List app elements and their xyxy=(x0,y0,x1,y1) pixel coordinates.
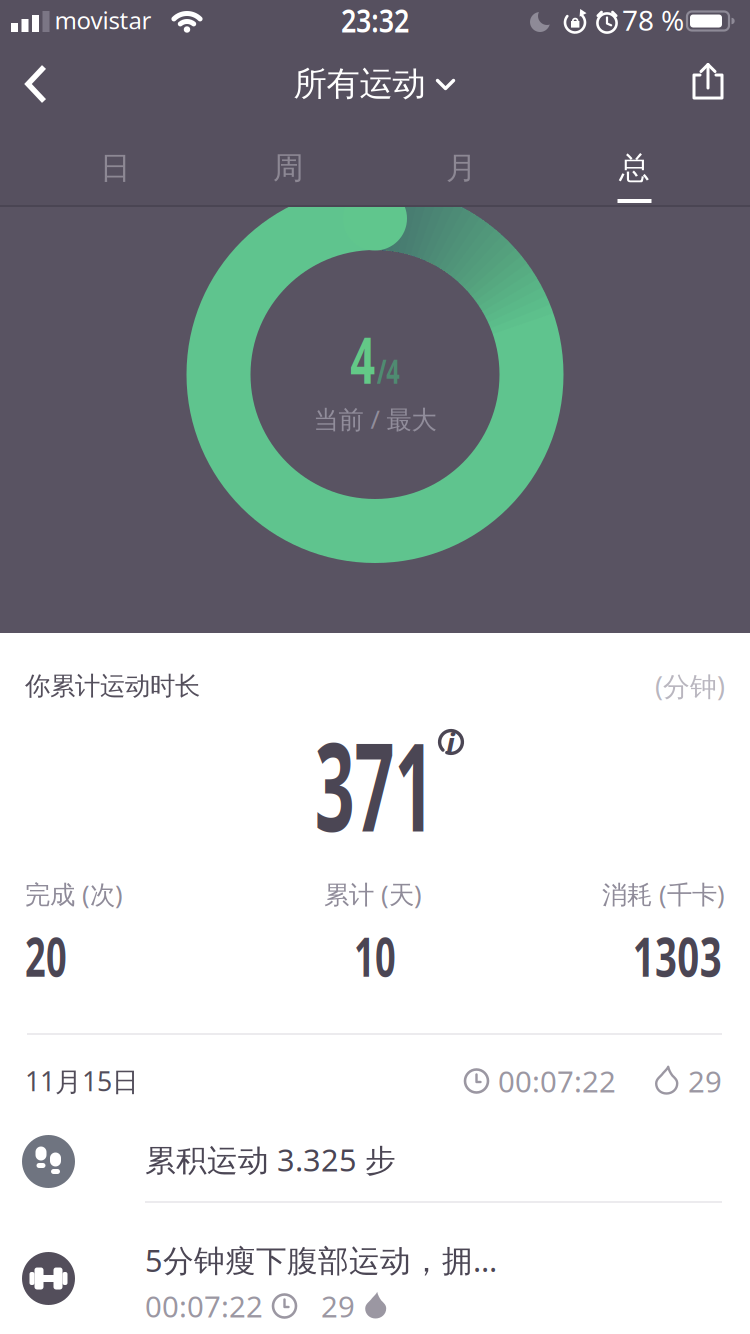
staticText: 总 xyxy=(619,149,650,187)
staticText: 371 xyxy=(269,703,479,865)
button[interactable]: 月 xyxy=(375,138,548,198)
staticText: 4 xyxy=(338,316,375,401)
staticText: 日 xyxy=(100,149,131,187)
staticText: 1303 xyxy=(598,921,722,991)
staticText: 00:07:22 xyxy=(145,1286,271,1325)
button[interactable]: Back xyxy=(14,64,58,104)
staticText: 所有运动 xyxy=(293,63,425,104)
staticText: i xyxy=(446,723,455,762)
button[interactable]: 总 xyxy=(548,138,721,198)
staticText: 00:07:22 xyxy=(490,1061,616,1100)
staticText: 78 % xyxy=(622,1,684,39)
staticText: 20 xyxy=(25,921,87,991)
staticText: 月 xyxy=(446,149,477,187)
button[interactable]: 日 xyxy=(29,138,202,198)
button[interactable]: Info xyxy=(438,729,464,755)
staticText: 累积运动 3.325 步 xyxy=(145,1139,396,1180)
staticText: 累计 (天) xyxy=(324,877,422,911)
staticText: 29 xyxy=(680,1061,722,1100)
button[interactable]: 累积运动 3.325 步 xyxy=(0,1120,750,1220)
staticText: 你累计运动时长 xyxy=(25,670,200,701)
staticText: 消耗 (千卡) xyxy=(602,877,725,911)
button[interactable]: 5分钟瘦下腹部运动，拥… xyxy=(0,1225,750,1334)
staticText: 5分钟瘦下腹部运动，拥… xyxy=(145,1240,497,1280)
staticText: 29 xyxy=(321,1286,363,1325)
button[interactable]: Share xyxy=(689,63,727,105)
button[interactable]: 周 xyxy=(202,138,375,198)
staticText: 10 xyxy=(344,921,406,991)
staticText: 周 xyxy=(273,149,304,187)
staticText: movistar xyxy=(54,4,151,36)
staticText: /4 xyxy=(377,347,411,393)
staticText: (分钟) xyxy=(655,668,725,704)
staticText: 23:32 xyxy=(334,0,415,41)
button[interactable]: 所有运动 xyxy=(293,63,454,104)
staticText: 当前 / 最大 xyxy=(313,402,436,436)
staticText: 11月15日 xyxy=(25,1063,139,1099)
staticText: 完成 (次) xyxy=(25,877,123,911)
